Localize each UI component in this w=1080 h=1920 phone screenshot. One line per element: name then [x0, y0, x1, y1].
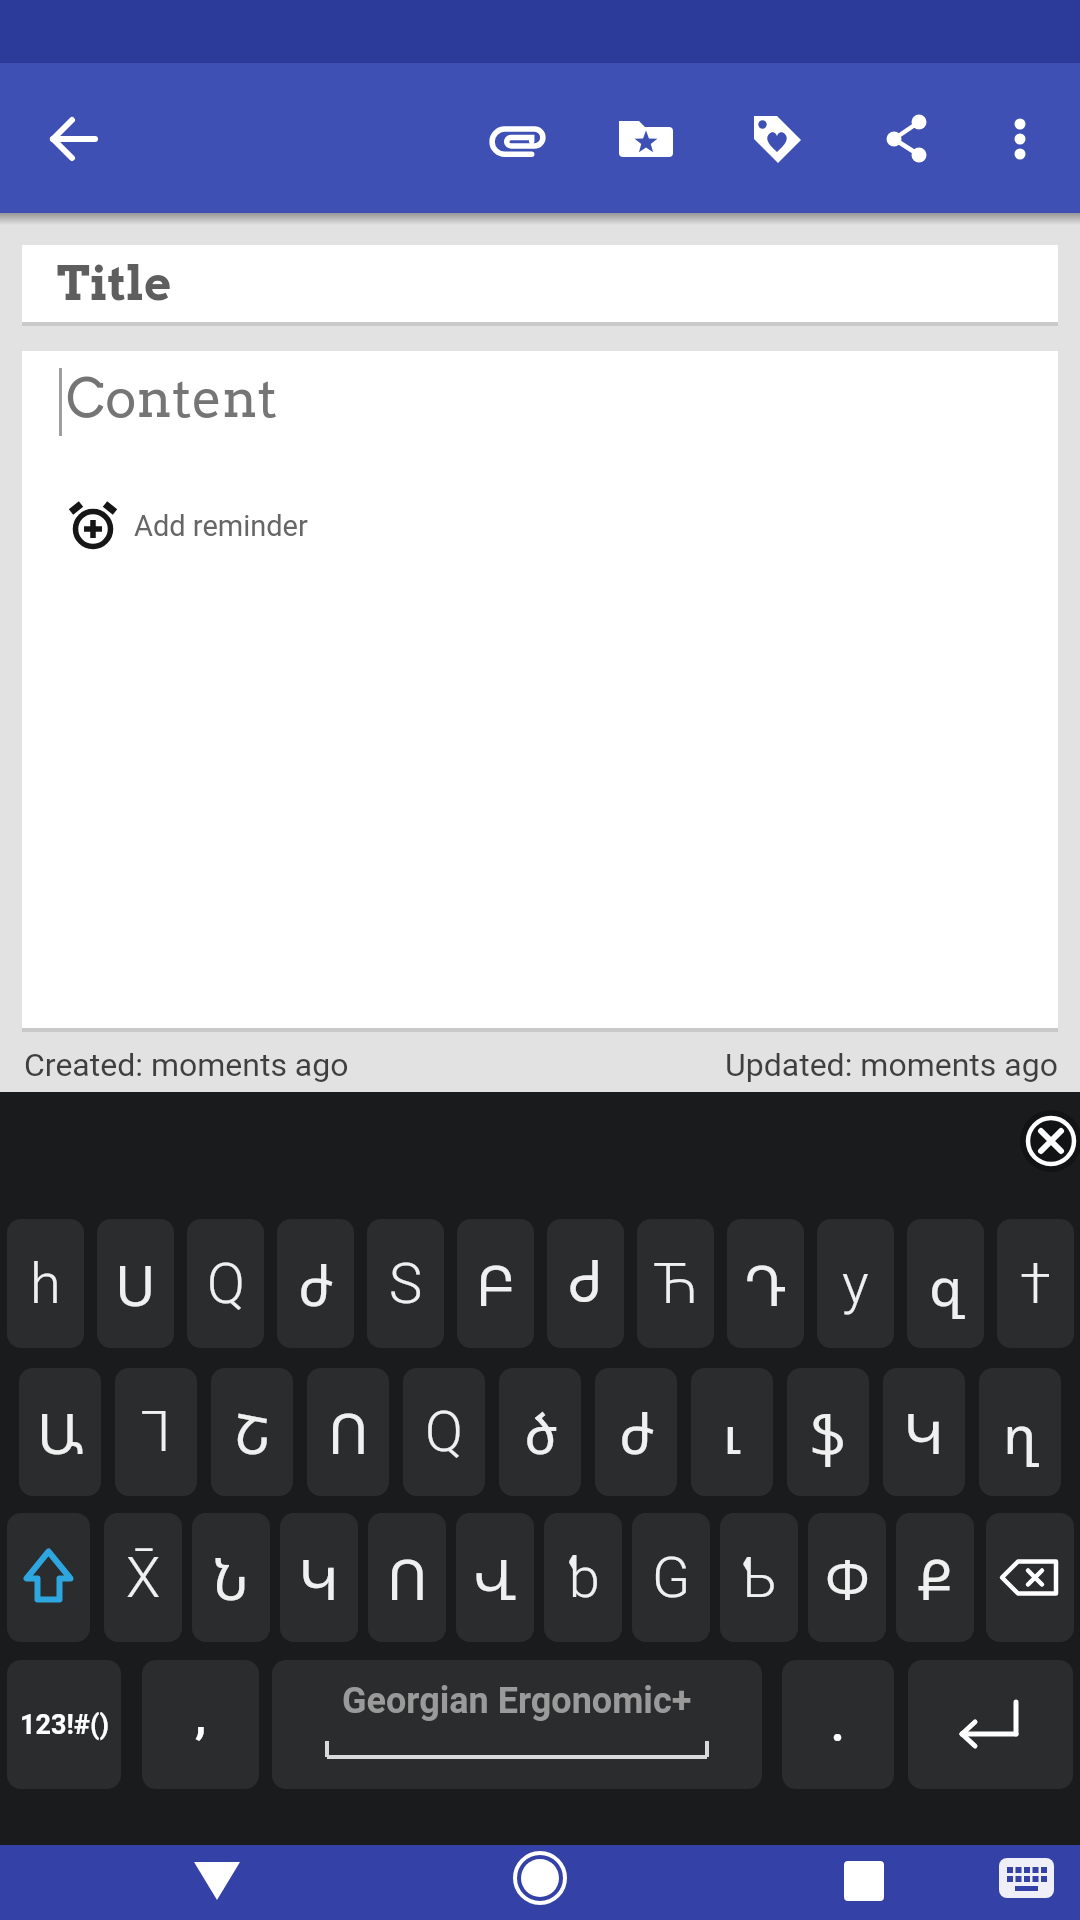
button[interactable]: Ք [896, 1513, 974, 1642]
staticText: Ք [918, 1540, 953, 1616]
button[interactable] [187, 1845, 247, 1920]
staticText: Georgian Ergonomic+ [342, 1680, 692, 1722]
staticText: Կ [299, 1540, 339, 1616]
staticText: ժ [619, 1394, 654, 1470]
staticText: ֆ [810, 1394, 846, 1470]
staticText: ծ [524, 1394, 557, 1470]
button[interactable]: ղ [979, 1368, 1061, 1496]
staticText: S [389, 1251, 423, 1317]
button[interactable]: Դ [727, 1219, 804, 1348]
staticText: Q [207, 1251, 245, 1317]
button[interactable]: Ո [368, 1513, 446, 1642]
button[interactable] [834, 1845, 894, 1920]
button[interactable] [908, 1660, 1073, 1789]
button[interactable] [616, 109, 676, 169]
button[interactable]: Ƅ [720, 1513, 798, 1642]
button[interactable] [1016, 1106, 1080, 1170]
staticText: ղ [1003, 1394, 1037, 1470]
button[interactable]: ժ [277, 1219, 354, 1348]
staticText: Փ [825, 1540, 870, 1616]
button[interactable] [510, 1845, 570, 1920]
button[interactable]: y [817, 1219, 894, 1348]
staticText: Դ [744, 1246, 787, 1322]
button[interactable]: Վ [456, 1513, 534, 1642]
button[interactable]: S [367, 1219, 444, 1348]
staticText: † [1020, 1251, 1051, 1317]
staticText: Updated: moments ago [725, 1046, 1058, 1084]
button[interactable]: Շ [211, 1368, 293, 1496]
button[interactable]: ծ [499, 1368, 581, 1496]
button[interactable] [22, 351, 1058, 1028]
button[interactable]: ւ [691, 1368, 773, 1496]
staticText: Add reminder [134, 509, 308, 543]
button[interactable] [986, 1513, 1074, 1642]
staticText: Վ [473, 1540, 518, 1616]
staticText: h [30, 1251, 61, 1317]
button[interactable]: G [632, 1513, 710, 1642]
button[interactable] [747, 109, 807, 169]
button[interactable]: ժ [595, 1368, 677, 1496]
staticText: Ս [115, 1246, 156, 1322]
staticText: Բ [476, 1246, 515, 1322]
button[interactable]: ֆ [787, 1368, 869, 1496]
button[interactable]: Ћ [637, 1219, 714, 1348]
button[interactable]: X̄ [104, 1513, 182, 1642]
staticText: G [652, 1545, 691, 1611]
button[interactable] [44, 109, 104, 169]
button[interactable]: Georgian Ergonomic+ [272, 1660, 762, 1789]
button[interactable]: Ն [192, 1513, 270, 1642]
staticText: Title [57, 255, 172, 312]
button[interactable]: Բ [457, 1219, 534, 1348]
staticText: Շ [234, 1394, 271, 1470]
staticText: Ꮷ [570, 1256, 601, 1312]
staticText: Ԛ [425, 1399, 463, 1465]
button[interactable]: h [7, 1219, 84, 1348]
button[interactable] [990, 109, 1050, 169]
button[interactable]: † [997, 1219, 1074, 1348]
staticText: Ћ [653, 1251, 699, 1317]
staticText: Ꞁ [141, 1399, 171, 1465]
staticText: , [195, 1690, 207, 1744]
button[interactable]: զ [907, 1219, 984, 1348]
staticText: զ [929, 1246, 963, 1322]
staticText: Ա [37, 1394, 84, 1470]
staticText: Ն [213, 1540, 249, 1616]
button[interactable]: Add reminder [58, 490, 658, 562]
button[interactable] [7, 1513, 90, 1642]
button[interactable]: , [142, 1660, 259, 1789]
button[interactable]: Title [22, 245, 1058, 322]
button[interactable]: Կ [280, 1513, 358, 1642]
staticText: Created: moments ago [24, 1046, 349, 1084]
button[interactable]: Ꮷ [547, 1219, 624, 1348]
button[interactable]: ƅ [544, 1513, 622, 1642]
button[interactable] [486, 109, 546, 169]
button[interactable]: Ս [97, 1219, 174, 1348]
staticText: Content [66, 366, 278, 430]
button[interactable]: . [782, 1660, 894, 1789]
button[interactable]: Q [187, 1219, 264, 1348]
button[interactable]: Ꞁ [115, 1368, 197, 1496]
staticText: 123!#() [20, 1709, 109, 1741]
button[interactable]: Ո [307, 1368, 389, 1496]
button[interactable]: Փ [808, 1513, 886, 1642]
staticText: . [831, 1698, 845, 1752]
button[interactable]: Ԛ [403, 1368, 485, 1496]
staticText: Ո [328, 1394, 369, 1470]
staticText: Կ [904, 1394, 944, 1470]
staticText: Ƅ [741, 1545, 777, 1611]
staticText: X̄ [126, 1545, 161, 1611]
button[interactable]: 123!#() [7, 1660, 121, 1789]
staticText: ժ [298, 1246, 333, 1322]
staticText: Ո [387, 1540, 428, 1616]
button[interactable]: Ա [19, 1368, 101, 1496]
staticText: ւ [723, 1394, 741, 1470]
button[interactable]: Կ [883, 1368, 965, 1496]
staticText: ƅ [567, 1545, 600, 1611]
staticText: y [842, 1251, 869, 1317]
button[interactable] [877, 109, 937, 169]
button[interactable] [996, 1845, 1062, 1920]
